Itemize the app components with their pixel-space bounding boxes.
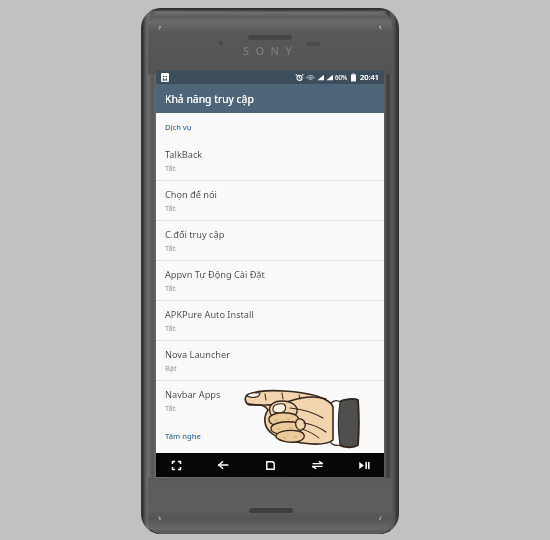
button[interactable]: Play pause [349,453,379,477]
staticText: Khả năng truy cập [165,92,254,106]
staticText: Bật [165,363,177,373]
staticText: Tắt [165,163,176,173]
staticText: SONY [243,43,299,58]
staticText: Tắt [165,243,176,253]
staticText: Tắt [165,283,176,293]
staticText: Tắt [165,323,176,333]
staticText: C.đổi truy cập [165,228,225,241]
button[interactable]: Nova Launcher [156,340,384,380]
button[interactable]: Full screen [161,453,191,477]
button[interactable]: TalkBack [156,140,384,180]
staticText: 60% [335,73,348,81]
button[interactable]: C.đổi truy cập [156,220,384,260]
button[interactable]: APKPure Auto Install [156,300,384,340]
staticText: Tâm nghe [165,431,201,441]
staticText: Nova Launcher [165,348,230,361]
staticText: Appvn Tự Động Cài Đặt [165,268,265,281]
button[interactable]: Navbar Apps [156,380,384,420]
staticText: Chọn để nói [165,188,217,201]
button[interactable]: Switch apps [302,453,332,477]
staticText: APKPure Auto Install [165,308,254,321]
button[interactable]: Home [255,453,285,477]
button[interactable]: Appvn Tự Động Cài Đặt [156,260,384,300]
button[interactable]: Khả năng truy cập [156,84,384,113]
staticText: TalkBack [165,148,203,161]
staticText: Navbar Apps [165,388,221,401]
staticText: Tắt [165,203,176,213]
button[interactable]: Chọn để nói [156,180,384,220]
staticText: Tắt [165,403,176,413]
staticText: Dịch vụ [165,122,192,132]
button[interactable]: Back [208,453,238,477]
button[interactable]: Tâm nghe [156,420,384,451]
staticText: 20:41 [360,72,379,82]
